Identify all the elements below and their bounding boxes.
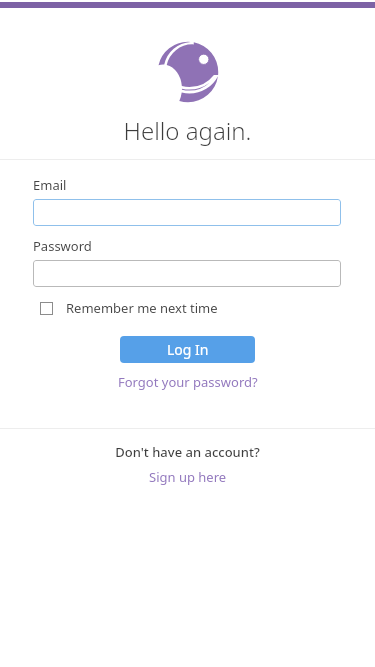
- staticText: Log In: [167, 340, 209, 359]
- button[interactable]: [33, 260, 341, 287]
- staticText: Hello again.: [0, 114, 375, 147]
- button[interactable]: Sign up here: [149, 468, 227, 486]
- other: App logo: [152, 36, 224, 108]
- staticText: Forgot your password?: [118, 373, 258, 391]
- button[interactable]: Log In: [120, 336, 255, 363]
- staticText: Remember me next time: [66, 299, 218, 317]
- staticText: Email: [33, 176, 67, 194]
- staticText: Don't have an account?: [0, 443, 375, 461]
- button[interactable]: Remember me next time: [40, 299, 218, 317]
- staticText: Sign up here: [149, 468, 227, 486]
- button[interactable]: Forgot your password?: [118, 373, 258, 391]
- staticText: Password: [33, 237, 92, 255]
- button[interactable]: [33, 199, 341, 226]
